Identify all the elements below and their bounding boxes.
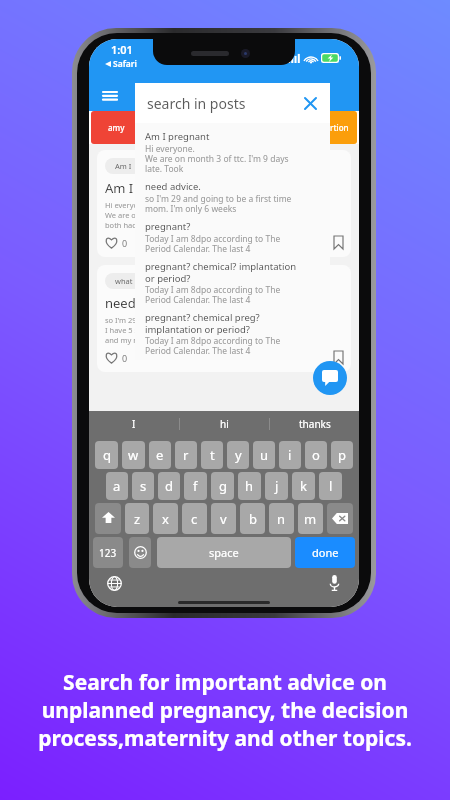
button[interactable]: g	[211, 472, 234, 500]
button[interactable]	[199, 111, 249, 144]
staticText: Search for important advice on unplanned…	[10, 668, 440, 752]
staticText: pregnant?	[145, 220, 191, 233]
button[interactable]: r	[175, 441, 197, 469]
staticText: v	[220, 510, 227, 528]
staticText: space	[209, 545, 239, 560]
button[interactable]: b	[240, 503, 265, 534]
staticText: x	[162, 510, 169, 528]
button[interactable]: Am I pregnant	[145, 130, 324, 180]
button[interactable]: hi	[180, 411, 269, 437]
staticText: 123	[99, 546, 117, 560]
staticText: thanks	[299, 417, 331, 431]
staticText: Safari	[113, 58, 137, 70]
button[interactable]: k	[292, 472, 315, 500]
button[interactable]: Am I	[97, 150, 351, 257]
button[interactable]: Backspace	[327, 503, 353, 534]
button[interactable]: u	[253, 441, 275, 469]
button[interactable]: w	[122, 441, 145, 469]
staticText: s	[140, 477, 147, 495]
staticText: d	[165, 477, 173, 495]
staticText: need advice.	[145, 180, 201, 193]
button[interactable]: h	[238, 472, 261, 500]
button[interactable]: Change keyboard	[103, 572, 125, 594]
button[interactable]: I	[89, 411, 179, 437]
staticText: pregnant? chemical preg? implantation or…	[145, 311, 260, 335]
staticText: l	[329, 477, 333, 495]
button[interactable]: search in posts	[135, 83, 330, 123]
staticText: 1:01	[111, 42, 133, 57]
staticText: m	[304, 510, 317, 528]
staticText: need advice.	[105, 294, 182, 312]
button[interactable]	[145, 111, 195, 144]
button[interactable]: Menu	[99, 86, 121, 108]
staticText: q	[103, 446, 111, 464]
button[interactable]: f	[184, 472, 207, 500]
staticText: r	[183, 446, 189, 464]
staticText: Am I	[115, 161, 132, 171]
staticText: I	[132, 417, 136, 431]
button[interactable]: p	[331, 441, 353, 469]
button[interactable]: e	[149, 441, 171, 469]
button[interactable]: n	[269, 503, 294, 534]
button[interactable]: amy	[91, 111, 141, 144]
staticText: Today I am 8dpo according to The Period …	[145, 335, 281, 355]
button[interactable]: t	[201, 441, 223, 469]
button[interactable]: a	[106, 472, 128, 500]
staticText: h	[245, 477, 254, 495]
button[interactable]: Voice input	[323, 572, 345, 594]
staticText: 0	[122, 237, 128, 249]
button[interactable]: Abortion	[307, 111, 357, 144]
staticText: a	[113, 477, 121, 495]
button[interactable]: i	[279, 441, 301, 469]
button[interactable]: j	[265, 472, 288, 500]
staticText: o	[312, 446, 320, 464]
staticText: search in posts	[147, 94, 246, 113]
staticText: y	[235, 446, 242, 464]
button[interactable]: Emoji	[129, 537, 151, 568]
button[interactable]: pregnant?	[145, 220, 324, 260]
button[interactable]: c	[182, 503, 207, 534]
button[interactable]: s	[132, 472, 154, 500]
button[interactable]: y	[227, 441, 249, 469]
button[interactable]: v	[211, 503, 236, 534]
button[interactable]: thanks	[270, 411, 359, 437]
staticText: Am I pregnant	[145, 130, 210, 143]
staticText: 0	[122, 352, 128, 364]
staticText: Hi everyone. We are on month 3 of ttc. I…	[145, 143, 289, 175]
staticText: i	[288, 446, 292, 464]
staticText: Abortion	[315, 122, 349, 133]
button[interactable]: q	[95, 441, 118, 469]
staticText: f	[193, 477, 198, 495]
button[interactable]: Shift	[95, 503, 121, 534]
staticText: u	[260, 446, 269, 464]
button[interactable]: Close search	[300, 93, 320, 113]
button[interactable]: New post	[313, 361, 347, 395]
staticText: so I'm 29 and going to be a first time m…	[145, 193, 292, 215]
button[interactable]: x	[153, 503, 178, 534]
staticText: k	[300, 477, 307, 495]
staticText: Am I pregnant	[105, 179, 194, 197]
button[interactable]: done	[295, 537, 355, 568]
staticText: what	[115, 276, 133, 286]
button[interactable]: pregnant? chemical? implantation or peri…	[145, 260, 324, 311]
button[interactable]: d	[158, 472, 180, 500]
button[interactable]: l	[319, 472, 342, 500]
button[interactable]: pregnant? chemical preg? implantation or…	[145, 311, 324, 360]
button[interactable]: what	[97, 265, 351, 372]
staticText: pregnant? chemical? implantation or peri…	[145, 260, 297, 284]
button[interactable]: need advice.	[145, 180, 324, 220]
staticText: so I'm 29 and going to be a first time I…	[105, 315, 235, 345]
button[interactable]: o	[305, 441, 327, 469]
staticText: c	[191, 510, 198, 528]
staticText: b	[249, 510, 257, 528]
button[interactable]: z	[125, 503, 149, 534]
button[interactable]: space	[157, 537, 291, 568]
staticText: p	[338, 446, 346, 464]
staticText: g	[219, 477, 227, 495]
staticText: w	[128, 446, 139, 464]
staticText: Today I am 8dpo according to The Period …	[145, 284, 281, 306]
button[interactable]: 123	[93, 537, 123, 568]
button[interactable]: m	[298, 503, 323, 534]
staticText: Hi everyone. We are on month 3 of ttc. I…	[105, 200, 232, 230]
